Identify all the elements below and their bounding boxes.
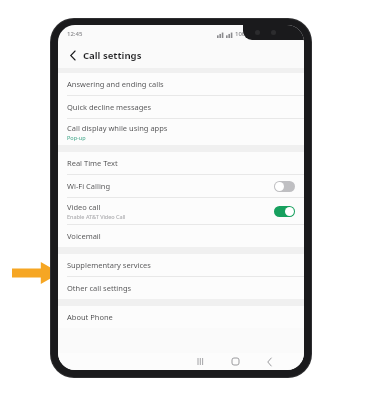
button[interactable]: Wi-Fi Calling toggle xyxy=(274,181,295,192)
staticText: Real Time Text xyxy=(67,158,118,168)
staticText: 100% xyxy=(235,30,251,38)
staticText: Video call xyxy=(67,202,101,212)
staticText: Enable AT&T Video Call xyxy=(67,213,126,220)
other: Pointer to Supplementary services xyxy=(12,262,60,284)
button[interactable]: Back xyxy=(258,353,280,370)
button[interactable]: Quick decline messages xyxy=(58,96,304,119)
button[interactable]: Back xyxy=(66,49,79,62)
button[interactable]: Call display while using apps xyxy=(58,119,304,145)
button[interactable]: Real Time Text xyxy=(58,152,304,175)
staticText: Pop-up xyxy=(67,134,86,141)
staticText: Call settings xyxy=(83,49,142,62)
button[interactable]: About Phone xyxy=(58,306,304,328)
staticText: Call display while using apps xyxy=(67,123,168,133)
staticText: Other call settings xyxy=(67,283,132,293)
staticText: Quick decline messages xyxy=(67,102,152,112)
button[interactable]: Other call settings xyxy=(58,277,304,299)
button[interactable]: Home xyxy=(224,353,246,370)
button[interactable]: Voicemail xyxy=(58,225,304,247)
button[interactable]: Recents xyxy=(190,353,212,370)
button[interactable]: Video call toggle xyxy=(274,206,295,217)
button[interactable]: Wi-Fi Calling xyxy=(58,175,304,198)
staticText: Supplementary services xyxy=(67,260,151,270)
staticText: Voicemail xyxy=(67,231,101,241)
button[interactable]: Supplementary services xyxy=(58,254,304,277)
staticText: About Phone xyxy=(67,312,113,322)
button[interactable]: Video call xyxy=(58,198,304,225)
staticText: Wi-Fi Calling xyxy=(67,181,111,191)
staticText: 12:45 xyxy=(67,30,83,38)
staticText: Answering and ending calls xyxy=(67,79,164,89)
button[interactable]: Answering and ending calls xyxy=(58,73,304,96)
